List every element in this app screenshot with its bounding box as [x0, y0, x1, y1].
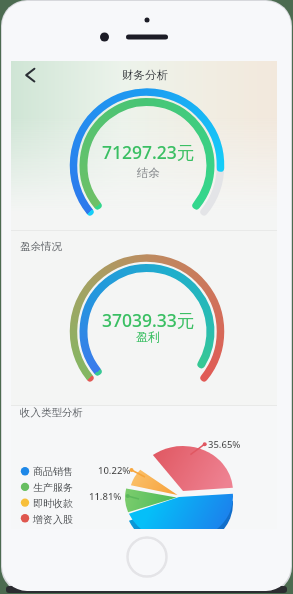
staticText: 财务分析 — [122, 68, 168, 82]
button[interactable] — [15, 61, 43, 89]
button[interactable]: 生产服务 — [17, 479, 92, 495]
staticText: 盈利 — [136, 329, 160, 344]
button[interactable]: 即时收款 — [17, 495, 92, 511]
staticText: 10.22% — [98, 464, 131, 477]
staticText: 71297.23元 — [102, 140, 195, 164]
staticText: 收入类型分析 — [20, 406, 83, 419]
staticText: 生产服务 — [33, 481, 73, 494]
staticText: 盈余情况 — [20, 240, 62, 253]
staticText: 11.81% — [89, 490, 122, 503]
staticText: 35.65% — [208, 438, 241, 451]
staticText: 商品销售 — [33, 465, 73, 478]
staticText: 37039.33元 — [102, 308, 195, 332]
button[interactable]: 商品销售 — [17, 463, 92, 479]
staticText: 增资入股 — [33, 513, 73, 526]
staticText: 结余 — [137, 166, 160, 180]
staticText: 即时收款 — [33, 497, 73, 510]
button[interactable] — [126, 536, 168, 578]
button[interactable]: 增资入股 — [17, 511, 92, 527]
